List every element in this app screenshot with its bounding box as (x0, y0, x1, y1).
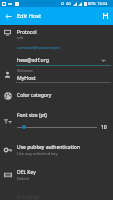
staticText: 4G (66, 1, 72, 6)
button[interactable] (0, 26, 113, 43)
staticText: ssh (17, 35, 24, 40)
staticText: 80% 13:34 (88, 1, 108, 6)
button[interactable] (0, 107, 113, 133)
staticText: Use pubkey authentication (17, 144, 80, 151)
button[interactable] (0, 88, 113, 104)
staticText: Encoding (17, 194, 39, 200)
staticText: Edit Host (17, 12, 42, 20)
staticText: hew@sdf.org (17, 56, 49, 63)
staticText: Nickname (17, 68, 33, 73)
staticText: MyHost (17, 74, 36, 81)
staticText: Font size (pt) (17, 112, 47, 119)
staticText: username@hostname:port (17, 45, 60, 50)
staticText: Use any unlocked key (17, 151, 58, 156)
button[interactable]: Back (0, 7, 16, 25)
staticText: Delete (17, 176, 30, 181)
staticText: Protocol (17, 29, 37, 36)
staticText: 10 (101, 124, 107, 131)
button[interactable] (0, 67, 113, 85)
button[interactable] (0, 165, 113, 186)
staticText: Color category (17, 92, 52, 99)
button[interactable]: Expand protocol (100, 57, 107, 64)
staticText: DEL Key (17, 169, 36, 176)
button[interactable]: Save (97, 7, 113, 25)
button[interactable] (0, 43, 113, 66)
button[interactable] (0, 140, 113, 161)
